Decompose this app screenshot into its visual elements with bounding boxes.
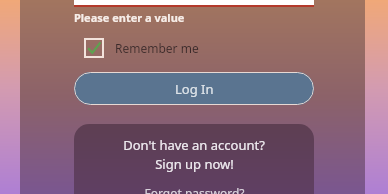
button[interactable]: Log In xyxy=(74,72,314,105)
button[interactable]: Remember me checkbox xyxy=(84,36,207,60)
other: Remember me checkbox xyxy=(84,38,104,58)
staticText: Log In xyxy=(175,80,214,98)
button[interactable]: Forgot password? xyxy=(74,185,314,194)
button[interactable]: Don't have an account? xyxy=(74,135,314,174)
staticText: Remember me xyxy=(115,40,199,56)
staticText: Forgot password? xyxy=(144,185,245,194)
staticText: Don't have an account? xyxy=(123,136,265,154)
staticText: Sign up now! xyxy=(155,155,234,173)
staticText: Please enter a value xyxy=(74,10,185,25)
